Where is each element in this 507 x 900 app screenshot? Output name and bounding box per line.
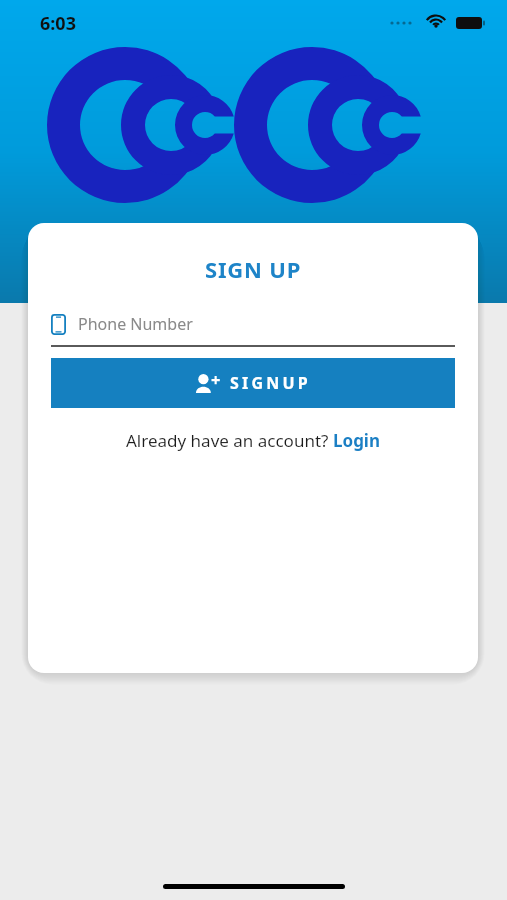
button[interactable]: SIGNUP [51, 358, 455, 408]
staticText: Phone Number [78, 313, 193, 335]
staticText: Already have an account? [126, 429, 333, 452]
staticText: Login [333, 429, 381, 452]
staticText: 6:03 [40, 11, 76, 36]
button[interactable]: Phone [51, 307, 455, 341]
button[interactable]: Already have an account? [28, 429, 478, 452]
staticText: SIGN UP [205, 254, 302, 284]
staticText: SIGNUP [230, 372, 311, 394]
other: Phone [51, 314, 66, 335]
